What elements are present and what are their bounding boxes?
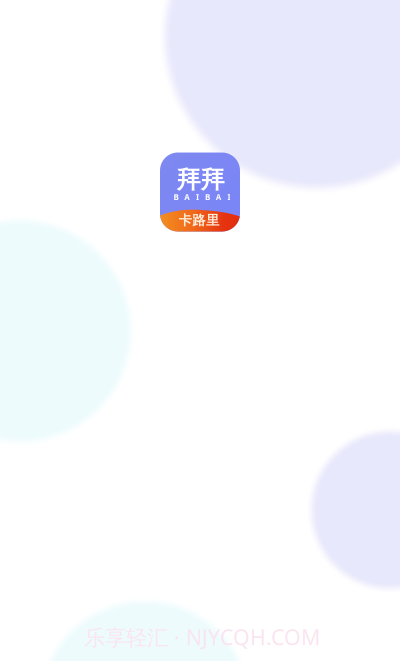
staticText: BAIBAI	[173, 192, 230, 202]
staticText: 卡路里	[178, 212, 219, 228]
staticText: 乐享轻汇 · NJYCQH.COM	[84, 623, 320, 651]
staticText: 拜拜	[176, 165, 224, 194]
